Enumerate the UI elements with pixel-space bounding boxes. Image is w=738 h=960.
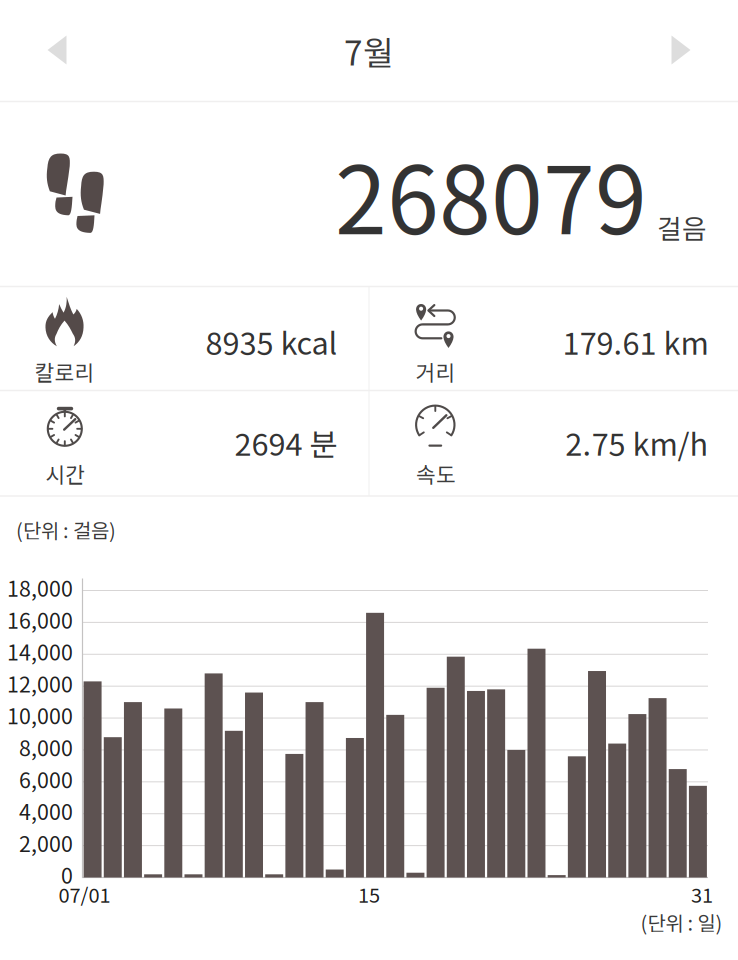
staticText: 15 <box>358 879 380 908</box>
staticText: 179.61 km <box>562 319 708 364</box>
staticText: 시간 <box>45 458 85 489</box>
staticText: 2694 분 <box>234 420 337 465</box>
staticText: 268079 <box>335 126 647 261</box>
staticText: 8,000 <box>19 731 73 762</box>
staticText: 2,000 <box>19 827 73 858</box>
button[interactable]: Next month <box>637 6 725 94</box>
staticText: 31 <box>691 879 713 908</box>
staticText: 속도 <box>416 458 456 489</box>
staticText: 4,000 <box>19 795 73 826</box>
staticText: 칼로리 <box>34 356 94 387</box>
staticText: 8935 kcal <box>205 319 337 364</box>
staticText: (단위 : 일) <box>640 907 722 936</box>
staticText: 걸음 <box>657 208 707 246</box>
staticText: 18,000 <box>7 572 73 603</box>
staticText: 16,000 <box>7 604 73 635</box>
button[interactable]: Previous month <box>13 6 101 94</box>
staticText: 0 <box>61 859 73 890</box>
staticText: 거리 <box>415 356 455 387</box>
staticText: 6,000 <box>19 763 73 794</box>
staticText: 07/01 <box>58 879 110 908</box>
staticText: 14,000 <box>7 636 73 667</box>
staticText: 7월 <box>344 27 394 75</box>
staticText: 10,000 <box>7 700 73 730</box>
button[interactable]: 7월 <box>269 11 469 91</box>
staticText: (단위 : 걸음) <box>16 515 116 544</box>
staticText: 2.75 km/h <box>565 420 708 465</box>
staticText: 12,000 <box>7 668 73 699</box>
